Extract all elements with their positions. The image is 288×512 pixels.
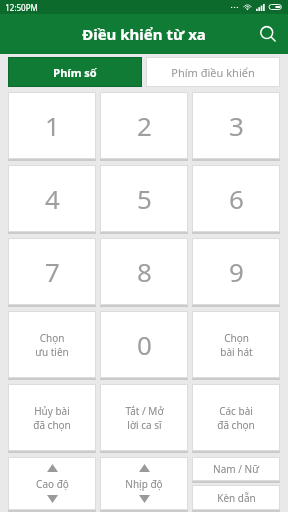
staticText: 12:50PM — [5, 2, 38, 13]
staticText: Tắt / Mở lời ca sĩ — [125, 404, 164, 432]
staticText: Cao độ — [36, 477, 69, 491]
button[interactable]: 8 — [100, 238, 188, 305]
button[interactable]: Nhịp độ — [100, 457, 188, 510]
staticText: 7 — [45, 254, 60, 289]
button[interactable]: 5 — [100, 165, 188, 232]
button[interactable]: Nam / Nữ — [192, 457, 280, 481]
staticText: Các bài đã chọn — [217, 404, 255, 432]
button[interactable]: 9 — [192, 238, 280, 305]
staticText: Kèn dẫn — [217, 491, 256, 505]
staticText: 2 — [137, 108, 152, 143]
staticText: 3 — [229, 108, 244, 143]
staticText: Phím điều khiển — [171, 65, 255, 80]
staticText: 5 — [137, 181, 152, 216]
button[interactable]: Chọn ưu tiên — [8, 311, 96, 378]
staticText: 4 — [45, 181, 60, 216]
staticText: Hủy bài đã chọn — [33, 404, 71, 432]
staticText: Nam / Nữ — [213, 462, 259, 476]
button[interactable]: Hủy bài đã chọn — [8, 384, 96, 451]
button[interactable]: 2 — [100, 92, 188, 159]
button[interactable]: Phím số — [8, 57, 142, 87]
button[interactable]: 6 — [192, 165, 280, 232]
staticText: Chọn bài hát — [220, 331, 253, 359]
staticText: 6 — [229, 181, 244, 216]
button[interactable]: Phím điều khiển — [146, 57, 280, 87]
staticText: 1 — [45, 108, 60, 143]
staticText: 8 — [137, 254, 152, 289]
staticText: Phím số — [53, 65, 97, 80]
button[interactable]: Tắt / Mở lời ca sĩ — [100, 384, 188, 451]
staticText: 0 — [137, 327, 152, 362]
button[interactable]: 7 — [8, 238, 96, 305]
staticText: Nhịp độ — [125, 477, 163, 491]
button[interactable]: 3 — [192, 92, 280, 159]
staticText: Điều khiển từ xa — [82, 24, 206, 44]
staticText: Chọn ưu tiên — [35, 331, 69, 359]
button[interactable]: Search — [248, 14, 288, 54]
button[interactable]: 4 — [8, 165, 96, 232]
button[interactable]: 0 — [100, 311, 188, 378]
button[interactable]: Chọn bài hát — [192, 311, 280, 378]
button[interactable]: Các bài đã chọn — [192, 384, 280, 451]
button[interactable]: 1 — [8, 92, 96, 159]
staticText: 9 — [229, 254, 244, 289]
button[interactable]: Kèn dẫn — [192, 485, 280, 510]
button[interactable]: Cao độ — [8, 457, 96, 510]
